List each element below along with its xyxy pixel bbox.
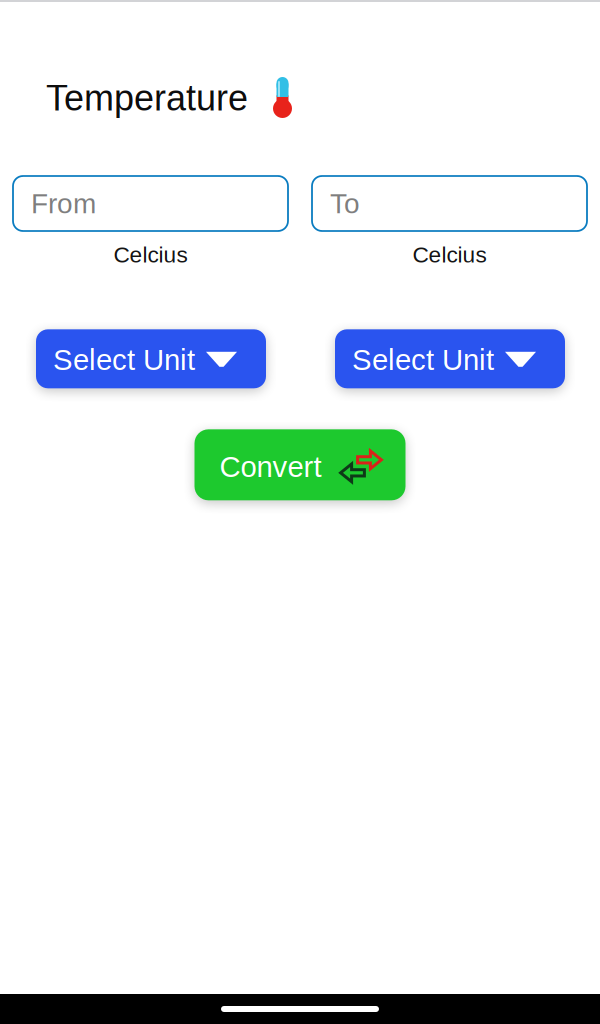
staticText: From: [31, 188, 96, 219]
staticText: Celcius: [412, 242, 486, 267]
staticText: Select Unit: [53, 343, 195, 376]
staticText: Temperature: [46, 78, 248, 118]
staticText: Convert: [219, 450, 321, 483]
button[interactable]: Select Unit: [36, 329, 266, 388]
button[interactable]: Convert: [194, 429, 405, 500]
staticText: To: [330, 188, 360, 219]
staticText: Celcius: [113, 242, 187, 267]
button[interactable]: Select Unit: [335, 329, 565, 388]
button[interactable]: From: [13, 176, 288, 231]
button[interactable]: To: [312, 176, 587, 231]
staticText: Select Unit: [352, 343, 494, 376]
